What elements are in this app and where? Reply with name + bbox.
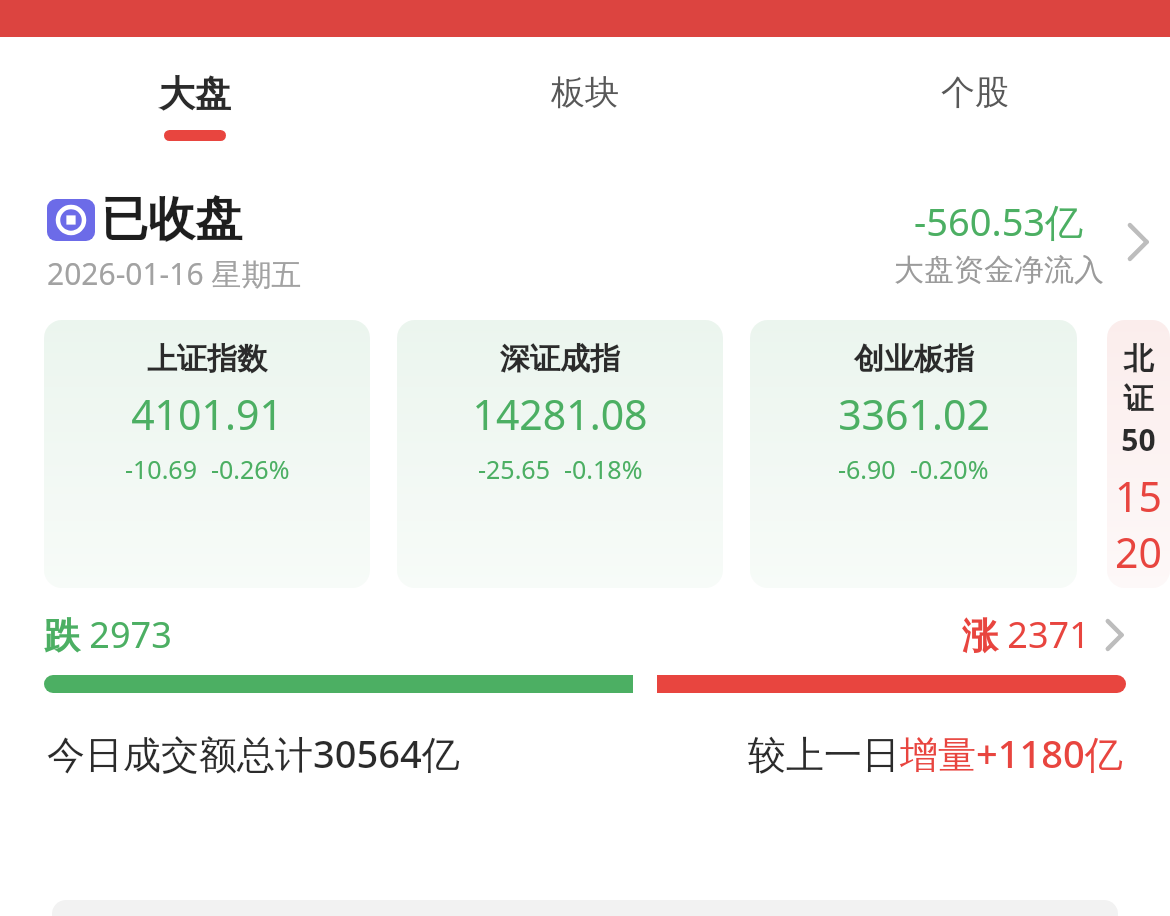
button[interactable]: 板块	[390, 37, 780, 158]
staticText: 上证指数	[147, 340, 267, 378]
staticText: -6.90	[838, 452, 896, 486]
staticText: -0.20%	[910, 452, 989, 486]
staticText: 2026-01-16 星期五	[47, 253, 302, 294]
staticText: -0.18%	[564, 452, 643, 486]
staticText: -10.69	[125, 452, 197, 486]
staticText: 深证成指	[500, 340, 620, 378]
button[interactable]: 北证50	[1107, 320, 1170, 588]
button[interactable]: 上证指数	[44, 320, 370, 588]
staticText: -0.26%	[211, 452, 290, 486]
staticText: 跌 2973	[44, 610, 172, 659]
staticText: 较上一日增量+1180亿	[748, 727, 1123, 779]
staticText: 今日成交额总计30564亿	[47, 727, 460, 779]
staticText: 个股	[941, 71, 1009, 114]
staticText: 1520.30	[1113, 468, 1164, 588]
button[interactable]: 已收盘	[0, 190, 1170, 294]
button[interactable]: 深证成指	[397, 320, 723, 588]
staticText: 4101.91	[131, 386, 283, 442]
staticText: 大盘	[159, 71, 231, 116]
staticText: 创业板指	[854, 340, 974, 378]
staticText: 板块	[551, 71, 619, 114]
other: 涨跌家数详情	[1098, 612, 1126, 658]
button[interactable]: 创业板指	[750, 320, 1077, 588]
staticText: 北证50	[1113, 340, 1164, 460]
staticText: 大盘资金净流入	[894, 251, 1104, 289]
other: 大盘资金净流入详情	[1118, 214, 1152, 270]
staticText: 已收盘	[101, 190, 242, 249]
button[interactable]: 大盘	[0, 37, 390, 158]
staticText: 3361.02	[838, 386, 990, 442]
staticText: -25.65	[478, 452, 550, 486]
staticText: -560.53亿	[914, 195, 1084, 247]
button[interactable]: 跌 2973	[0, 610, 1170, 693]
staticText: 14281.08	[472, 386, 648, 442]
button[interactable]: 个股	[780, 37, 1170, 158]
staticText: 涨 2371	[962, 610, 1090, 659]
